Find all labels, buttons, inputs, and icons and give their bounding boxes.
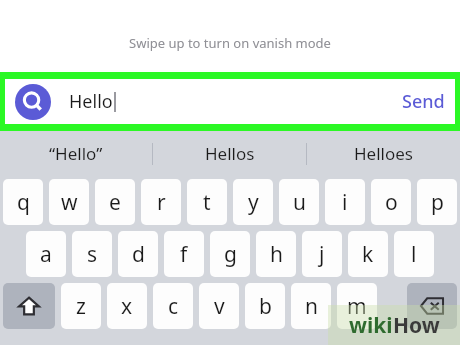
button[interactable]: b — [245, 283, 285, 329]
button[interactable]: t — [187, 179, 227, 225]
staticText: v — [214, 292, 225, 321]
button[interactable]: g — [210, 231, 250, 277]
staticText: How — [393, 311, 440, 340]
button[interactable]: p — [417, 179, 457, 225]
staticText: w — [61, 188, 78, 217]
staticText: x — [121, 292, 133, 321]
button[interactable]: i — [325, 179, 365, 225]
button[interactable]: d — [118, 231, 158, 277]
staticText: “Hello” — [49, 142, 103, 165]
button[interactable]: Send — [402, 89, 445, 114]
button[interactable]: Hellos — [153, 131, 306, 176]
staticText: n — [305, 292, 318, 321]
staticText: q — [17, 188, 30, 217]
button[interactable]: Helloes — [307, 131, 460, 176]
button[interactable]: m — [337, 283, 377, 329]
staticText: y — [248, 188, 259, 217]
button[interactable]: s — [72, 231, 112, 277]
staticText: Swipe up to turn on vanish mode — [129, 34, 331, 52]
staticText: m — [347, 292, 367, 321]
button[interactable]: f — [164, 231, 204, 277]
button[interactable]: n — [291, 283, 331, 329]
button[interactable]: Backspace — [407, 283, 457, 329]
staticText: h — [270, 240, 283, 269]
button[interactable]: Search — [15, 84, 51, 120]
button[interactable]: q — [3, 179, 43, 225]
button[interactable]: j — [302, 231, 342, 277]
staticText: g — [224, 240, 237, 269]
button[interactable]: h — [256, 231, 296, 277]
button[interactable]: y — [233, 179, 273, 225]
staticText: c — [168, 292, 179, 321]
staticText: j — [319, 240, 325, 269]
staticText: b — [259, 292, 272, 321]
staticText: d — [132, 240, 145, 269]
button[interactable]: a — [26, 231, 66, 277]
button[interactable]: u — [279, 179, 319, 225]
button[interactable]: e — [95, 179, 135, 225]
staticText: p — [431, 188, 444, 217]
staticText: o — [385, 188, 398, 217]
staticText: a — [40, 240, 52, 269]
staticText: Helloes — [354, 142, 413, 165]
button[interactable]: c — [153, 283, 193, 329]
staticText: u — [293, 188, 306, 217]
button[interactable]: r — [141, 179, 181, 225]
button[interactable]: Search — [5, 79, 455, 124]
staticText: i — [342, 188, 348, 217]
staticText: e — [109, 188, 121, 217]
staticText: z — [76, 292, 86, 321]
staticText: wiki — [349, 311, 393, 340]
staticText: f — [180, 240, 188, 269]
staticText: r — [157, 188, 166, 217]
button[interactable]: x — [107, 283, 147, 329]
staticText: k — [362, 240, 374, 269]
button[interactable]: v — [199, 283, 239, 329]
staticText: t — [203, 188, 211, 217]
staticText: Hellos — [205, 142, 255, 165]
staticText: s — [87, 240, 98, 269]
button[interactable]: Shift — [3, 283, 55, 329]
staticText: Send — [402, 89, 445, 114]
button[interactable]: z — [61, 283, 101, 329]
button[interactable]: l — [394, 231, 434, 277]
button[interactable]: k — [348, 231, 388, 277]
button[interactable]: “Hello” — [0, 131, 152, 176]
staticText: l — [411, 240, 417, 269]
staticText: Hello — [69, 89, 113, 114]
button[interactable]: w — [49, 179, 89, 225]
button[interactable]: o — [371, 179, 411, 225]
